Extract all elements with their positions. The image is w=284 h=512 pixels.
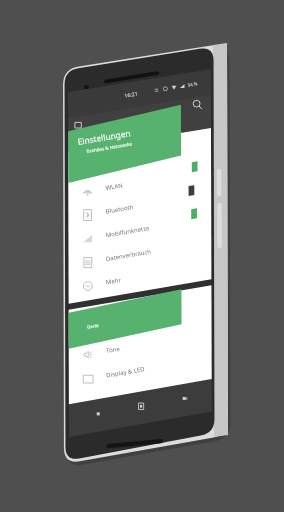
button[interactable]: Einstellungen settings screen on phone [0,0,284,512]
